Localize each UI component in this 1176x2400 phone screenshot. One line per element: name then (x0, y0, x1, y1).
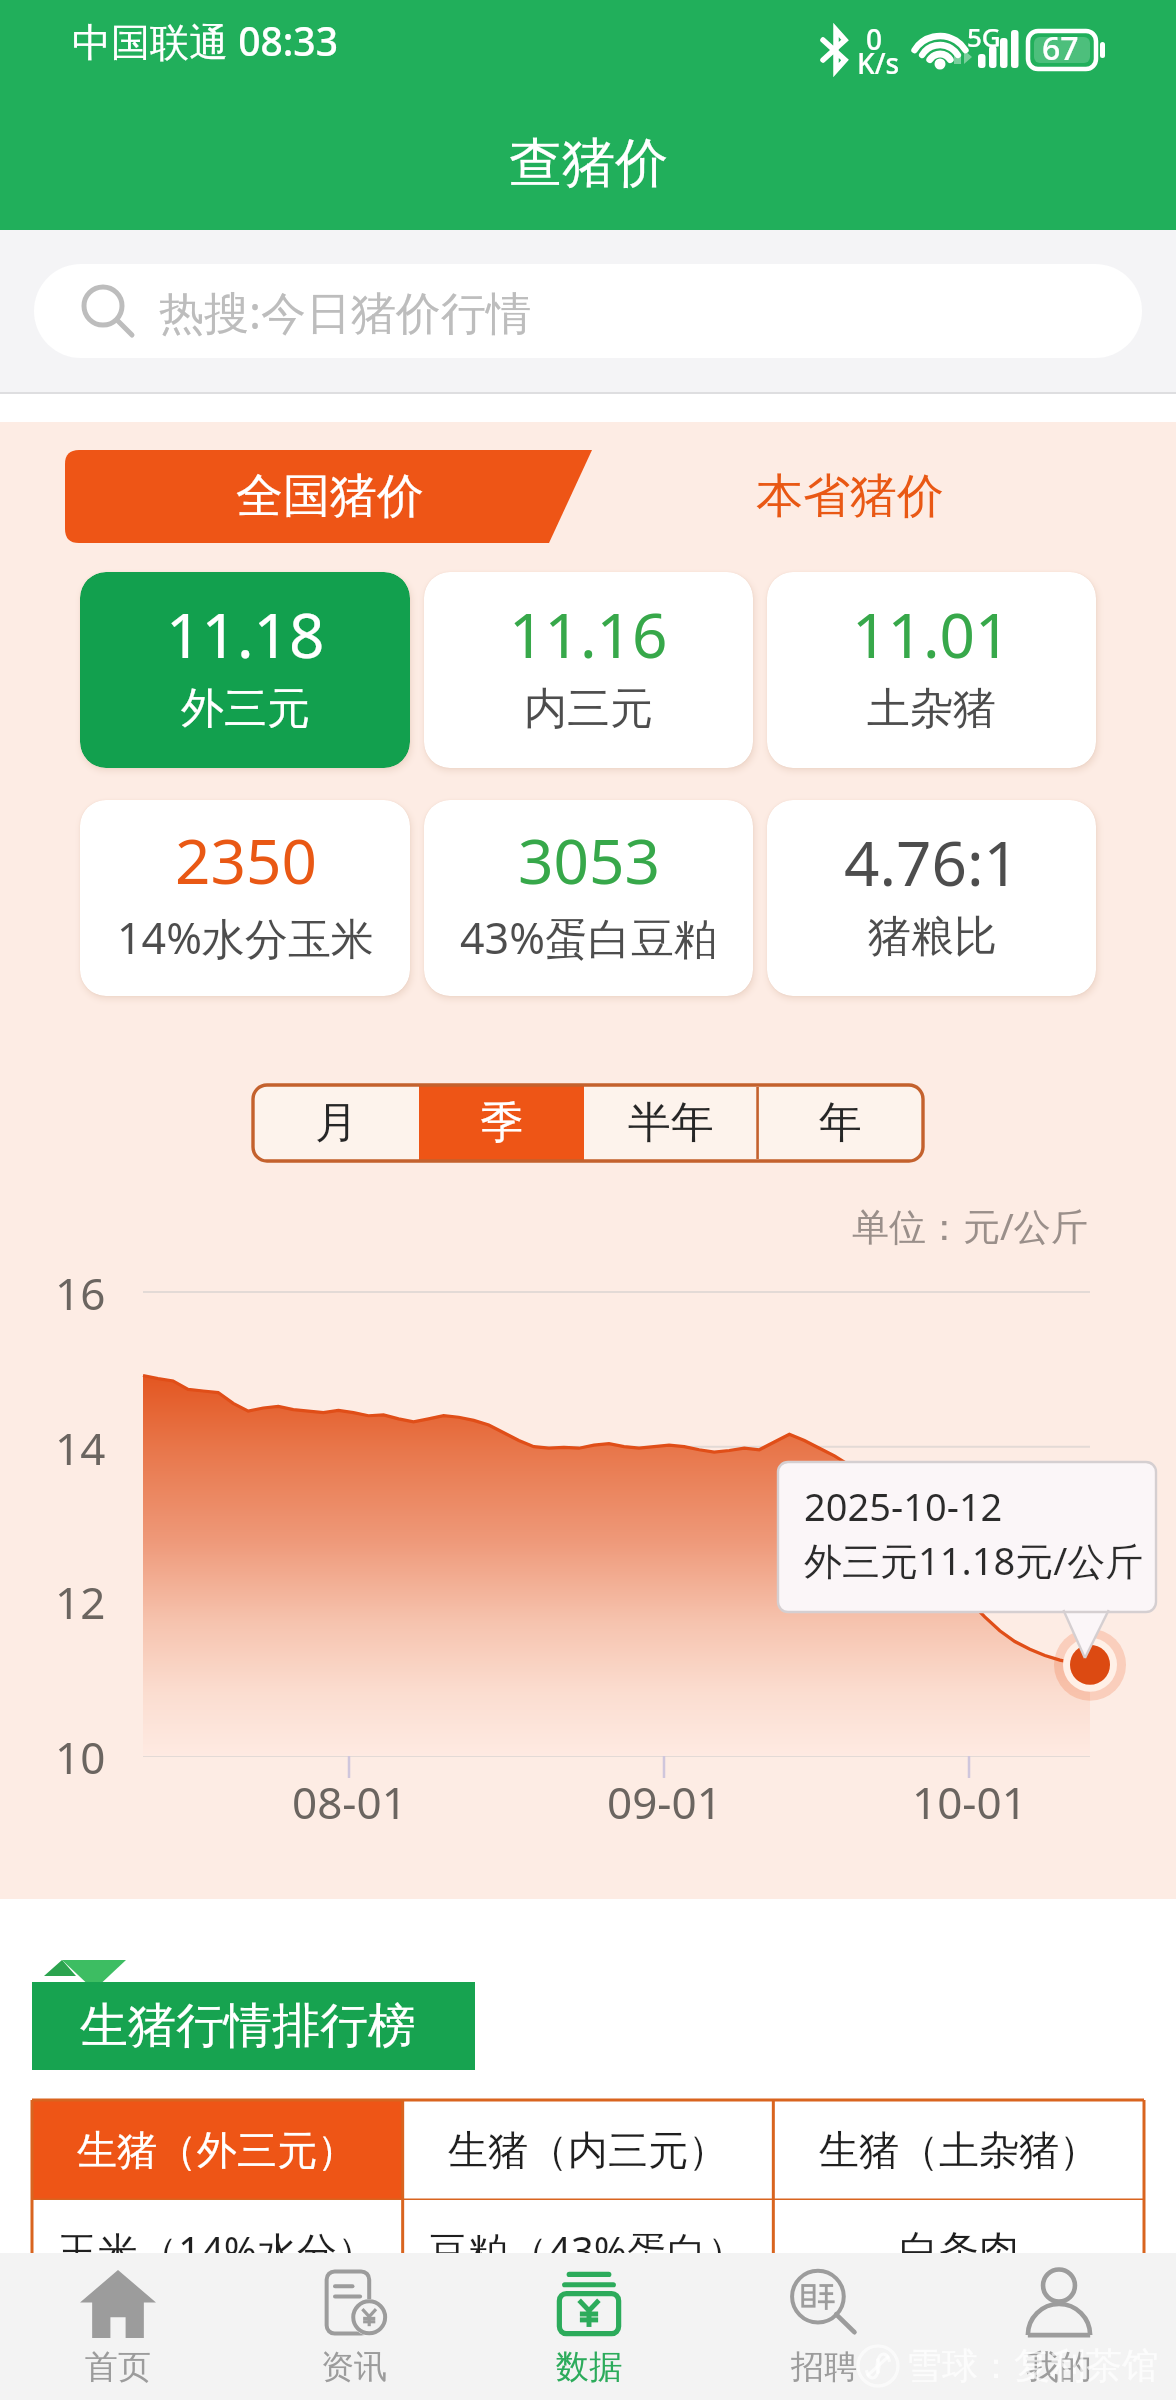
staticText: 14 (55, 1418, 106, 1478)
staticText: 招聘 (791, 2346, 857, 2388)
staticText: 09-01 (607, 1772, 722, 1832)
staticText: 猪粮比 (868, 910, 997, 964)
button[interactable]: 生猪（土杂猪） (773, 2100, 1144, 2200)
staticText: 首页 (85, 2346, 151, 2388)
staticText: K/s (857, 44, 900, 82)
staticText: 2025-10-12 (804, 1480, 1003, 1532)
button[interactable]: 生猪（内三元） (402, 2100, 773, 2200)
staticText: 67 (1042, 26, 1079, 70)
button[interactable]: 全国猪价 (165, 450, 495, 543)
staticText: 0 (866, 20, 883, 58)
button[interactable]: 季 (419, 1085, 584, 1161)
button[interactable]: 11.16 (424, 572, 753, 768)
staticText: 单位：元/公斤 (852, 1200, 1088, 1251)
staticText: 11.01 (852, 592, 1011, 676)
staticText: 16 (55, 1263, 106, 1323)
button[interactable]: 生猪行情排行榜 (32, 1982, 475, 2070)
staticText: 中国联通 08:33 (72, 14, 338, 67)
staticText: 季 (480, 1096, 523, 1150)
button[interactable]: 首页 (0, 2253, 236, 2400)
staticText: 资讯 (321, 2346, 387, 2388)
staticText: 年 (819, 1096, 862, 1150)
staticText: 本省猪价 (756, 467, 944, 526)
staticText: 我的 (1026, 2346, 1092, 2388)
staticText: 数据 (556, 2346, 622, 2388)
staticText: 查猪价 (509, 130, 668, 197)
button[interactable]: 2350 (80, 800, 410, 996)
staticText: 10-01 (912, 1772, 1027, 1832)
staticText: 08-01 (292, 1772, 407, 1832)
staticText: 全国猪价 (236, 467, 424, 526)
staticText: 外三元11.18元/公斤 (804, 1534, 1144, 1586)
staticText: 12 (55, 1572, 106, 1632)
button[interactable]: 热搜:今日猪价行情 (34, 264, 1142, 358)
staticText: 生猪（外三元） (77, 2125, 357, 2175)
staticText: 热搜:今日猪价行情 (159, 281, 532, 342)
button[interactable]: 年 (758, 1085, 923, 1161)
button[interactable]: 11.01 (767, 572, 1096, 768)
staticText: 生猪（土杂猪） (819, 2125, 1099, 2175)
button[interactable]: 玉米（14%水分） (32, 2200, 402, 2300)
button[interactable]: 我的 (941, 2253, 1176, 2400)
staticText: 玉米（14%水分） (58, 2223, 377, 2278)
staticText: 白条肉 (899, 2225, 1019, 2275)
staticText: 2350 (175, 818, 317, 902)
button[interactable]: 资讯 (236, 2253, 471, 2400)
staticText: 5G (967, 19, 1001, 54)
button[interactable]: 招聘 (706, 2253, 941, 2400)
button[interactable]: 3053 (424, 800, 753, 996)
staticText: 月 (315, 1096, 358, 1150)
staticText: 生猪行情排行榜 (80, 1996, 416, 2056)
button[interactable]: 4.76:1 (767, 800, 1096, 996)
staticText: 豆粕（43%蛋白） (428, 2223, 747, 2278)
staticText: 43%蛋白豆粕 (460, 908, 717, 967)
staticText: 外三元 (181, 682, 310, 736)
button[interactable]: 白条肉 (773, 2200, 1144, 2300)
staticText: 内三元 (524, 682, 653, 736)
staticText: 11.16 (509, 592, 668, 676)
button[interactable]: 数据 (471, 2253, 706, 2400)
staticText: 10 (55, 1727, 106, 1787)
button[interactable]: 豆粕（43%蛋白） (402, 2200, 773, 2300)
staticText: 14%水分玉米 (117, 908, 374, 967)
staticText: 半年 (628, 1096, 714, 1150)
staticText: 11.18 (166, 592, 325, 676)
staticText: 土杂猪 (867, 682, 996, 736)
staticText: 生猪（内三元） (448, 2125, 728, 2175)
button[interactable]: 本省猪价 (705, 450, 995, 543)
button[interactable]: 月 (253, 1085, 419, 1161)
button[interactable]: 半年 (584, 1085, 758, 1161)
staticText: 雪球：复利茶馆 (906, 2343, 1158, 2388)
staticText: 3053 (518, 818, 660, 902)
button[interactable]: 生猪（外三元） (32, 2100, 402, 2200)
staticText: 4.76:1 (844, 820, 1020, 904)
button[interactable]: 11.18 (80, 572, 410, 768)
